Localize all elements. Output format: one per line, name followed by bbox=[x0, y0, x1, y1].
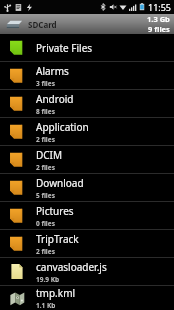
button[interactable]: SDCard bbox=[0, 14, 174, 34]
button[interactable]: Private Files bbox=[0, 34, 174, 61]
staticText: Alarms bbox=[36, 64, 69, 78]
button[interactable]: tmp.kml bbox=[0, 286, 174, 310]
staticText: 5 files bbox=[36, 191, 55, 200]
staticText: tmp.kml bbox=[36, 286, 76, 300]
staticText: Pictures bbox=[36, 204, 74, 218]
button[interactable]: Alarms bbox=[0, 62, 174, 89]
staticText: 11:55 bbox=[148, 1, 172, 13]
staticText: 2 files bbox=[36, 135, 55, 144]
staticText: 8 files bbox=[36, 107, 55, 116]
staticText: 1.1 Kb bbox=[36, 301, 56, 310]
staticText: 3 files bbox=[36, 79, 55, 88]
staticText: canvasloader.js bbox=[36, 260, 107, 274]
staticText: 1.3 Gb bbox=[147, 14, 170, 24]
staticText: 0 files bbox=[36, 219, 55, 228]
staticText: 2 files bbox=[36, 163, 55, 172]
staticText: 9 files bbox=[148, 24, 170, 34]
staticText: Download bbox=[36, 176, 84, 190]
button[interactable]: canvasloader.js bbox=[0, 258, 174, 285]
button[interactable]: Download bbox=[0, 174, 174, 201]
staticText: Private Files bbox=[36, 41, 93, 55]
button[interactable]: TripTrack bbox=[0, 230, 174, 257]
button[interactable]: Android bbox=[0, 90, 174, 117]
button[interactable]: DCIM bbox=[0, 146, 174, 173]
staticText: SDCard bbox=[28, 19, 57, 30]
staticText: Application bbox=[36, 120, 89, 134]
button[interactable]: Application bbox=[0, 118, 174, 145]
staticText: 19.9 Kb bbox=[36, 275, 60, 284]
staticText: Android bbox=[36, 92, 74, 106]
staticText: 2 files bbox=[36, 247, 55, 256]
staticText: DCIM bbox=[36, 148, 63, 162]
staticText: TripTrack bbox=[36, 232, 79, 246]
button[interactable]: Pictures bbox=[0, 202, 174, 229]
